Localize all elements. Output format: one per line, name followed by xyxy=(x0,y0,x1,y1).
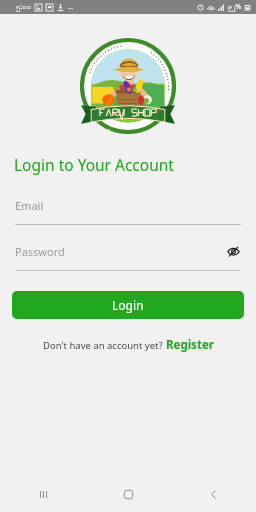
button[interactable]: Recents xyxy=(0,476,86,512)
button[interactable]: Back xyxy=(171,476,256,512)
button[interactable]: Password xyxy=(15,241,241,271)
button[interactable]: Home xyxy=(86,476,171,512)
staticText: … xyxy=(68,2,74,12)
staticText: Register xyxy=(166,337,214,353)
staticText: Login to Your Account xyxy=(14,154,174,175)
staticText: ၉၂% xyxy=(228,2,242,13)
button[interactable]: Login xyxy=(12,291,244,319)
staticText: Password xyxy=(15,244,225,259)
button[interactable]: Toggle password visibility xyxy=(225,243,241,259)
staticText: Login xyxy=(112,297,144,313)
button[interactable]: Register xyxy=(166,337,214,353)
staticText: Don't have an account yet? xyxy=(43,339,166,352)
staticText: Email xyxy=(15,198,241,213)
button[interactable]: Email xyxy=(15,195,241,225)
staticText: ၅:၀၀ xyxy=(16,1,31,13)
